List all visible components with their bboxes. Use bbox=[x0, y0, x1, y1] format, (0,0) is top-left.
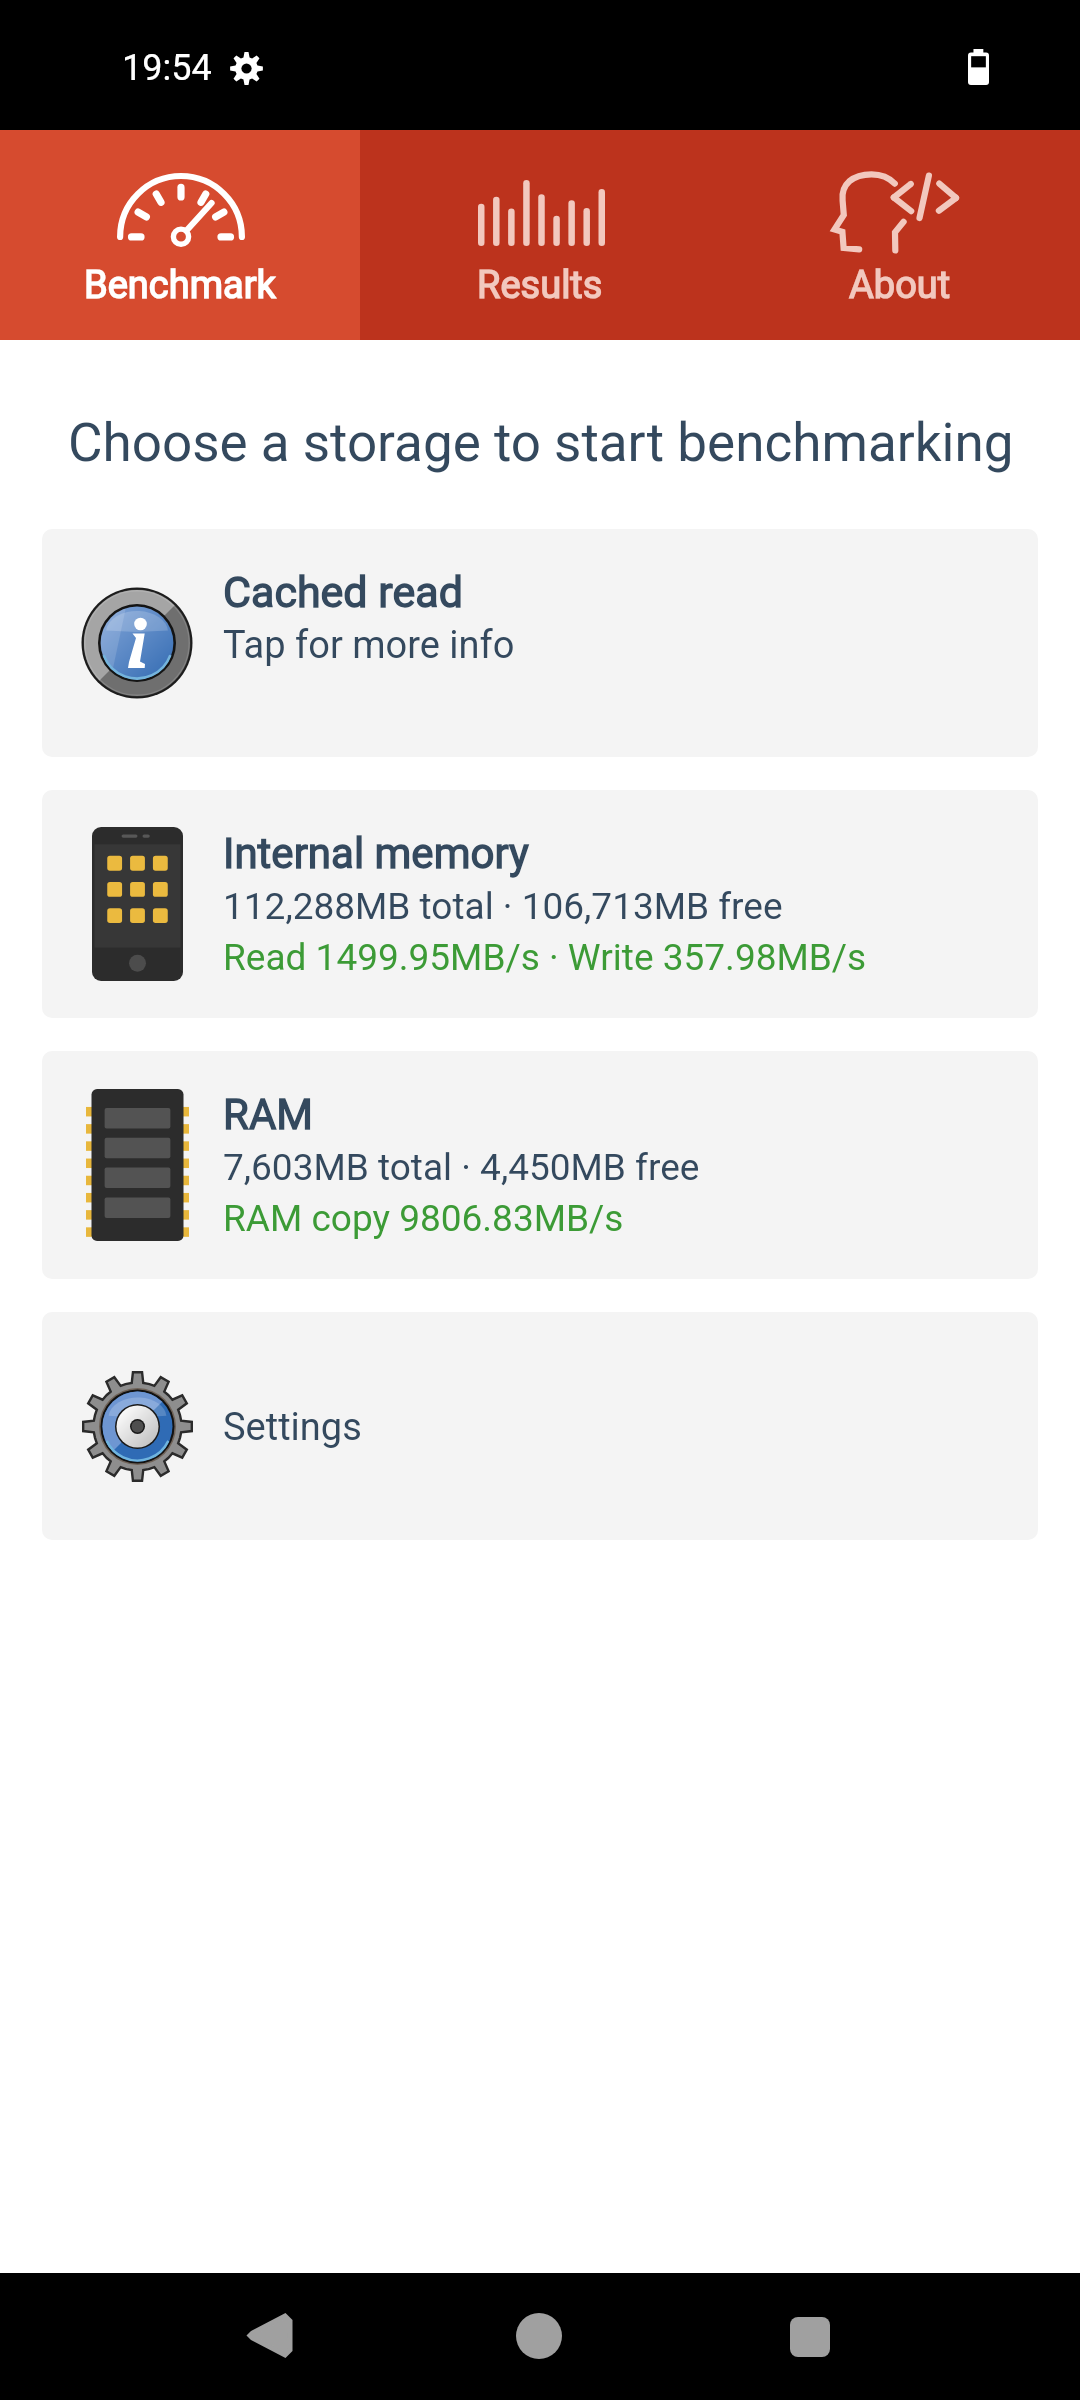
staticText: About bbox=[849, 263, 951, 308]
staticText: Benchmark bbox=[84, 263, 276, 308]
button[interactable]: Results bbox=[360, 130, 720, 340]
staticText: Cached read bbox=[223, 567, 463, 617]
button[interactable]: About bbox=[720, 130, 1080, 340]
button[interactable] bbox=[42, 1051, 1038, 1279]
staticText: RAM bbox=[223, 1090, 313, 1139]
staticText: Settings bbox=[223, 1405, 362, 1450]
button[interactable] bbox=[42, 1312, 1038, 1540]
staticText: Results bbox=[477, 263, 603, 308]
button[interactable] bbox=[42, 529, 1038, 757]
staticText: Read 1499.95MB/s · Write 357.98MB/s bbox=[223, 936, 867, 979]
staticText: Tap for more info bbox=[223, 623, 515, 668]
button[interactable]: Benchmark bbox=[0, 130, 360, 340]
staticText: 7,603MB total · 4,450MB free bbox=[223, 1146, 700, 1189]
button[interactable]: Back bbox=[210, 2275, 330, 2395]
staticText: 112,288MB total · 106,713MB free bbox=[223, 885, 783, 928]
button[interactable]: Home bbox=[479, 2276, 599, 2396]
button[interactable] bbox=[42, 790, 1038, 1018]
staticText: Internal memory bbox=[223, 829, 529, 878]
staticText: 19:54 bbox=[122, 47, 212, 89]
staticText: Choose a storage to start benchmarking bbox=[68, 412, 1014, 474]
staticText: RAM copy 9806.83MB/s bbox=[223, 1197, 624, 1240]
button[interactable]: Recents bbox=[750, 2277, 870, 2397]
